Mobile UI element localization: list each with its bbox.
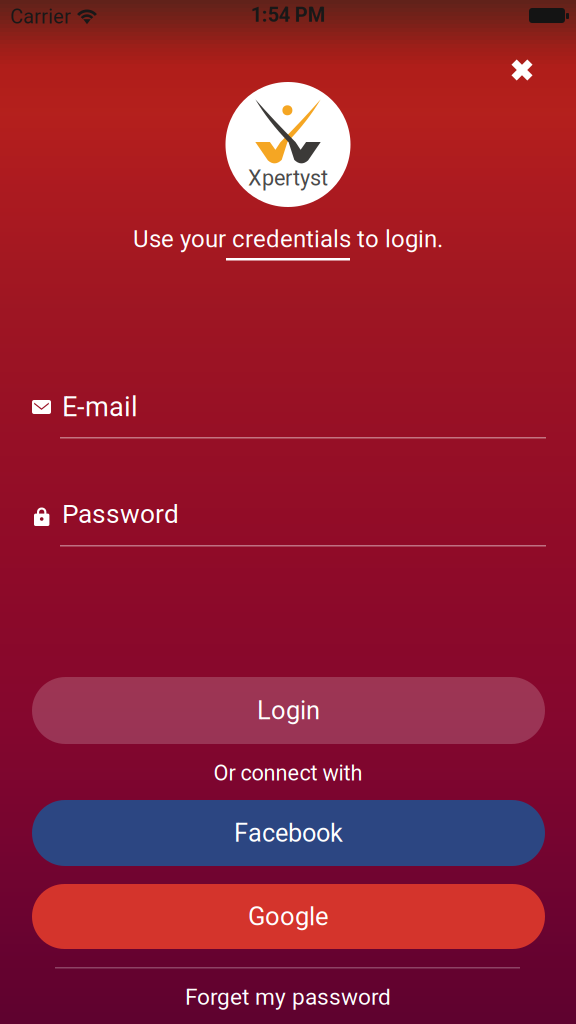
staticText: E-mail: [62, 391, 138, 423]
staticText: Facebook: [234, 818, 343, 848]
button[interactable]: Close: [494, 42, 550, 98]
staticText: Google: [248, 901, 329, 931]
button[interactable]: Facebook: [32, 800, 545, 866]
staticText: Or connect with: [213, 760, 362, 786]
button[interactable]: Google: [32, 884, 545, 949]
staticText: 1:54 PM: [250, 3, 325, 27]
staticText: Forget my password: [185, 984, 391, 1010]
button[interactable]: Forget my password: [0, 975, 576, 1019]
staticText: Use your credentials to login.: [133, 225, 443, 253]
button[interactable]: Login: [32, 677, 545, 744]
staticText: Password: [62, 499, 179, 529]
staticText: Carrier: [10, 5, 71, 28]
staticText: Xpertyst: [248, 165, 328, 191]
staticText: Login: [257, 696, 320, 725]
